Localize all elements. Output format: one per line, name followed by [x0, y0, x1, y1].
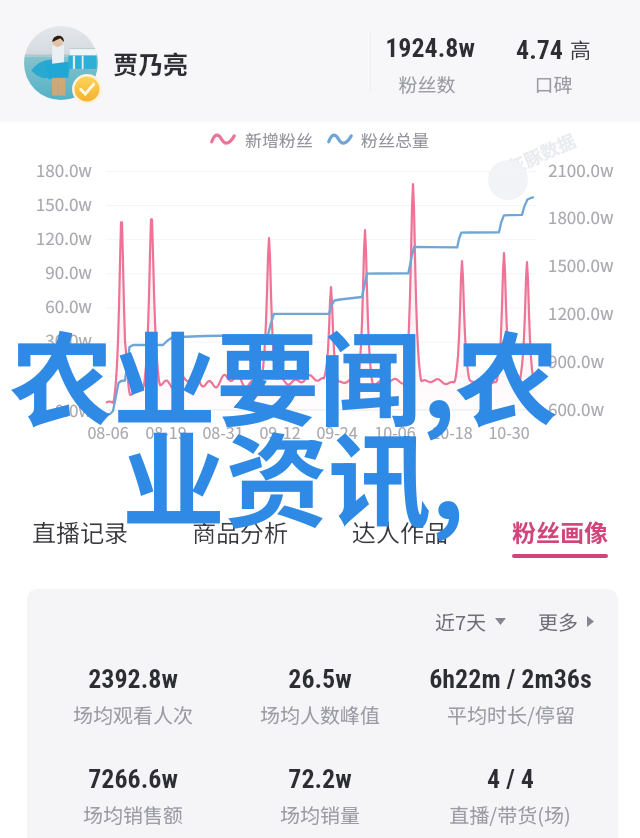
- staticText: 30.0w: [45, 327, 92, 349]
- staticText: 900.0w: [548, 348, 605, 370]
- staticText: 600.0w: [548, 396, 605, 418]
- staticText: 26.5w: [288, 664, 352, 694]
- staticText: 0.0w: [54, 397, 92, 419]
- button[interactable]: 更多: [534, 601, 598, 642]
- staticText: 场均观看人次: [73, 700, 193, 729]
- staticText: 粉丝数: [398, 70, 456, 96]
- staticText: 高: [570, 34, 591, 64]
- staticText: 10-06: [374, 420, 416, 442]
- staticText: 直播/带货(场): [449, 800, 571, 829]
- button[interactable]: [370, 22, 488, 102]
- staticText: 灰豚数据: [503, 126, 579, 179]
- button[interactable]: 粉丝画像: [480, 502, 640, 572]
- staticText: 120.0w: [35, 225, 92, 247]
- staticText: 贾乃亮: [113, 45, 189, 81]
- staticText: 10-30: [488, 420, 530, 442]
- staticText: 近7天: [435, 607, 487, 636]
- button[interactable]: 4 / 4: [412, 764, 608, 830]
- staticText: 达人作品: [352, 514, 448, 549]
- staticText: 09-24: [316, 420, 358, 442]
- button[interactable]: 直播记录: [0, 502, 160, 572]
- button[interactable]: 2392.8w: [35, 664, 231, 730]
- staticText: 场均销售额: [83, 800, 183, 829]
- staticText: 场均人数峰值: [260, 700, 380, 729]
- staticText: 6h22m / 2m36s: [429, 664, 592, 694]
- button[interactable]: 6h22m / 2m36s: [412, 664, 608, 730]
- staticText: 更多: [538, 607, 578, 636]
- staticText: 2392.8w: [88, 664, 178, 694]
- staticText: 1200.0w: [548, 300, 614, 322]
- staticText: 180.0w: [35, 157, 92, 179]
- staticText: 08-31: [202, 420, 244, 442]
- staticText: 口碑: [534, 70, 573, 96]
- button[interactable]: 4.74: [500, 30, 606, 70]
- staticText: 150.0w: [35, 191, 92, 213]
- button[interactable]: 商品分析: [160, 502, 320, 572]
- staticText: 1800.0w: [548, 204, 614, 226]
- staticText: 4.74: [516, 35, 563, 65]
- staticText: 平均时长/停留: [447, 700, 575, 729]
- staticText: 农业要闻,农: [10, 299, 559, 448]
- button[interactable]: 72.2w: [222, 764, 418, 830]
- button[interactable]: 达人作品: [320, 502, 480, 572]
- button[interactable]: 26.5w: [222, 664, 418, 730]
- staticText: 场均销量: [280, 800, 360, 829]
- staticText: 09-12: [259, 420, 301, 442]
- staticText: 08-19: [145, 420, 187, 442]
- staticText: 2100.0w: [548, 157, 614, 179]
- staticText: 7266.6w: [88, 764, 178, 794]
- staticText: 08-06: [87, 420, 129, 442]
- button[interactable]: 近7天: [431, 601, 510, 642]
- staticText: 10-18: [431, 420, 473, 442]
- staticText: 4 / 4: [487, 764, 534, 794]
- staticText: 1500.0w: [548, 252, 614, 274]
- staticText: 业资讯,: [122, 400, 465, 549]
- button[interactable]: 用户头像: [24, 26, 106, 108]
- staticText: 90.0w: [45, 259, 92, 281]
- staticText: 商品分析: [192, 514, 288, 549]
- button[interactable]: 7266.6w: [35, 764, 231, 830]
- staticText: 新增粉丝: [245, 127, 313, 152]
- staticText: 72.2w: [288, 764, 352, 794]
- staticText: 粉丝画像: [512, 514, 608, 549]
- staticText: 60.0w: [45, 293, 92, 315]
- staticText: 1924.8w: [385, 33, 475, 63]
- staticText: 直播记录: [32, 514, 128, 549]
- staticText: 粉丝总量: [361, 127, 429, 152]
